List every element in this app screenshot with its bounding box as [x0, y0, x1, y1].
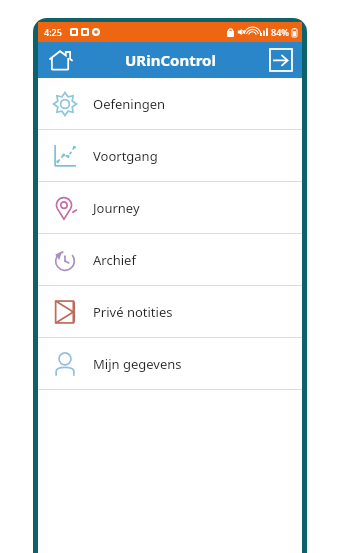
staticText: Archief: [93, 251, 136, 269]
staticText: URinControl: [125, 50, 216, 70]
button[interactable]: Privé notities: [38, 286, 302, 337]
button[interactable]: Journey: [38, 182, 302, 233]
button[interactable]: Oefeningen: [38, 78, 302, 129]
staticText: 4:25: [44, 26, 62, 38]
button[interactable]: Mijn gegevens: [38, 338, 302, 389]
staticText: Voortgang: [93, 147, 158, 165]
button[interactable]: Voortgang: [38, 130, 302, 181]
staticText: Privé notities: [93, 303, 173, 321]
staticText: Journey: [93, 199, 140, 217]
staticText: Oefeningen: [93, 95, 166, 113]
button[interactable]: Logout: [267, 46, 295, 74]
button[interactable]: Archief: [38, 234, 302, 285]
staticText: 84%: [271, 26, 289, 38]
staticText: Mijn gegevens: [93, 355, 182, 373]
button[interactable]: Home: [46, 45, 76, 75]
